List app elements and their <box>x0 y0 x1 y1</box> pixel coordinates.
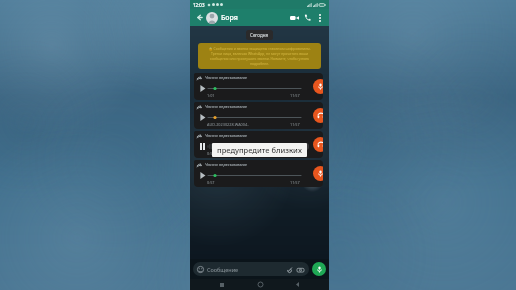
staticText: Сообщение <box>207 266 239 273</box>
staticText: 12:03 <box>193 2 205 8</box>
button[interactable]: Listening <box>313 108 323 123</box>
button[interactable]: Video call <box>288 11 301 24</box>
button[interactable]: Attach <box>285 265 294 274</box>
button[interactable]: Voice note sender <box>313 166 323 181</box>
button[interactable]: 🔒 Сообщения и звонки защищены сквозным ш… <box>198 43 321 69</box>
staticText: Часто пересылаемое <box>205 104 248 110</box>
staticText: 11:57 <box>290 180 300 185</box>
button[interactable]: Сообщение <box>193 262 309 276</box>
button[interactable] <box>206 12 218 24</box>
button[interactable]: Play <box>197 170 207 180</box>
staticText: Боря <box>221 13 238 23</box>
button[interactable]: Record voice message <box>312 262 326 276</box>
button[interactable]: Pause <box>197 141 207 151</box>
staticText: Часто пересылаемое <box>205 133 248 139</box>
staticText: AUD-20230228-WA004.. <box>207 122 250 127</box>
staticText: Часто пересылаемое <box>205 162 248 168</box>
staticText: 🔒 Сообщения и звонки защищены сквозным ш… <box>203 46 316 66</box>
button[interactable]: Часто пересылаемое <box>194 73 323 100</box>
button[interactable]: Play <box>197 112 207 122</box>
button[interactable]: Часто пересылаемое <box>194 102 323 129</box>
button[interactable]: 1× <box>298 143 309 150</box>
button[interactable]: Home <box>254 279 266 290</box>
button[interactable]: Back <box>194 12 205 23</box>
button[interactable]: Listening <box>313 137 323 152</box>
staticText: 1:01 <box>207 93 215 98</box>
staticText: 11:57 <box>290 93 300 98</box>
staticText: Часто пересылаемое <box>205 75 248 81</box>
button[interactable]: Recents <box>216 279 228 290</box>
button[interactable]: Play <box>197 83 207 93</box>
button[interactable]: Voice note sender <box>313 79 323 94</box>
staticText: Сегодня <box>250 32 269 38</box>
button[interactable]: Camera <box>296 265 305 274</box>
button[interactable]: Back <box>291 279 303 290</box>
button[interactable]: More options <box>314 12 325 23</box>
staticText: 0:57 <box>207 180 215 185</box>
staticText: 11:57 <box>290 122 300 127</box>
staticText: 11:57 <box>290 151 300 156</box>
button[interactable]: Часто пересылаемое <box>194 160 323 187</box>
button[interactable]: Боря <box>221 13 288 23</box>
button[interactable]: Call <box>301 11 314 24</box>
staticText: 0:57 <box>207 151 215 156</box>
button[interactable]: Часто пересылаемое <box>194 131 323 158</box>
staticText: предупредите близких <box>217 145 302 155</box>
